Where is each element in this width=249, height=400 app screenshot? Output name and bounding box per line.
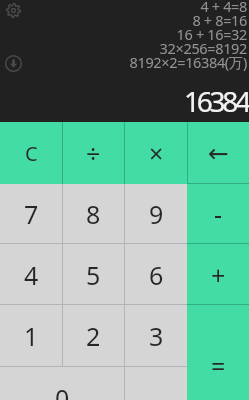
button[interactable]: Download history (4, 54, 23, 73)
staticText: C (25, 140, 38, 167)
button[interactable]: 0 (0, 367, 125, 400)
button[interactable]: 8 (62, 184, 124, 244)
staticText: = (211, 349, 226, 383)
staticText: × (149, 136, 164, 170)
button[interactable]: 1 (0, 304, 62, 367)
staticText: 8 (86, 197, 101, 231)
button[interactable]: 9 (125, 184, 187, 244)
staticText: 3 (149, 319, 164, 353)
button[interactable]: 5 (62, 244, 124, 305)
staticText: 9 (149, 197, 164, 231)
staticText: ÷ (86, 136, 101, 170)
staticText: 1 (24, 319, 39, 353)
button[interactable]: 2 (62, 304, 124, 367)
staticText: 16384 (0, 82, 248, 120)
button[interactable]: 7 (0, 184, 62, 244)
staticText: 4 + 4=8 8 + 8=16 16 + 16=32 32×256=8192 … (0, 0, 247, 73)
button[interactable]: 4 (0, 244, 62, 305)
button[interactable]: Clear (0, 122, 62, 184)
button[interactable]: Multiply (125, 122, 187, 184)
staticText: - (214, 197, 223, 231)
button[interactable]: Divide (62, 122, 124, 184)
staticText: 7 (24, 197, 39, 231)
button[interactable]: Minus (187, 184, 249, 244)
button[interactable]: Equals (187, 304, 249, 400)
button[interactable]: Settings (3, 0, 23, 20)
button[interactable]: 3 (125, 304, 187, 367)
staticText: 2 (86, 319, 101, 353)
staticText: + (211, 258, 226, 292)
staticText: ← (208, 139, 229, 168)
staticText: 4 (24, 258, 39, 292)
staticText: 6 (149, 258, 164, 292)
button[interactable]: Backspace (187, 122, 249, 184)
button[interactable]: Plus (187, 244, 249, 305)
button[interactable]: 6 (125, 244, 187, 305)
staticText: 5 (86, 258, 101, 292)
staticText: 0 (55, 381, 70, 400)
